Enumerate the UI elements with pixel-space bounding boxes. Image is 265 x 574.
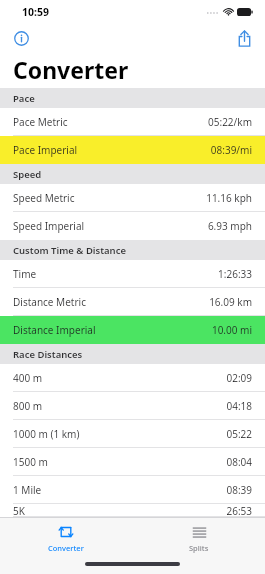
button[interactable]: Pace Metric xyxy=(0,108,265,136)
button[interactable]: 400 m xyxy=(0,364,265,392)
button[interactable]: 5K xyxy=(0,504,265,517)
staticText: Distance Imperial xyxy=(13,323,96,337)
button[interactable]: 1000 m (1 km) xyxy=(0,420,265,448)
button[interactable]: Converter xyxy=(0,518,132,558)
button[interactable]: Splits xyxy=(132,518,265,558)
staticText: 16.09 km xyxy=(209,295,252,309)
staticText: Race Distances xyxy=(13,348,83,361)
staticText: Splits xyxy=(189,543,209,553)
staticText: Time xyxy=(13,267,37,281)
staticText: Pace xyxy=(13,92,35,105)
button[interactable]: 800 m xyxy=(0,392,265,420)
staticText: 26:53 xyxy=(226,504,252,517)
button[interactable]: Time xyxy=(0,260,265,288)
staticText: Pace Imperial xyxy=(13,143,78,157)
staticText: 6.93 mph xyxy=(207,219,252,233)
button[interactable]: Share xyxy=(231,25,257,51)
staticText: 08:39/mi xyxy=(210,143,252,157)
staticText: Custom Time & Distance xyxy=(13,244,127,257)
staticText: 800 m xyxy=(13,399,43,413)
staticText: 04:18 xyxy=(226,399,252,413)
button[interactable]: 1 Mile xyxy=(0,476,265,504)
staticText: 1:26:33 xyxy=(218,267,252,281)
staticText: 5K xyxy=(13,504,25,517)
button[interactable]: Distance Metric xyxy=(0,288,265,316)
staticText: Speed Imperial xyxy=(13,219,85,233)
button[interactable]: Speed Imperial xyxy=(0,212,265,240)
staticText: 1500 m xyxy=(13,455,48,469)
button[interactable]: 1500 m xyxy=(0,448,265,476)
staticText: 02:09 xyxy=(226,371,252,385)
staticText: Pace Metric xyxy=(13,115,68,129)
staticText: 08:04 xyxy=(226,455,252,469)
staticText: 08:39 xyxy=(226,483,252,497)
button[interactable]: Pace Imperial xyxy=(0,136,265,164)
staticText: Converter xyxy=(48,543,84,553)
staticText: Distance Metric xyxy=(13,295,86,309)
staticText: 400 m xyxy=(13,371,43,385)
staticText: Speed xyxy=(13,168,42,181)
staticText: 10:59 xyxy=(22,5,49,19)
staticText: 11.16 kph xyxy=(206,191,252,205)
staticText: 05:22 xyxy=(226,427,252,441)
button[interactable]: Distance Imperial xyxy=(0,316,265,344)
staticText: 05:22/km xyxy=(208,115,252,129)
staticText: 1 Mile xyxy=(13,483,42,497)
staticText: Converter xyxy=(13,54,129,85)
button[interactable]: Speed Metric xyxy=(0,184,265,212)
button[interactable]: Information xyxy=(8,25,34,51)
staticText: 10.00 mi xyxy=(211,323,252,337)
staticText: 1000 m (1 km) xyxy=(13,427,80,441)
staticText: Speed Metric xyxy=(13,191,75,205)
